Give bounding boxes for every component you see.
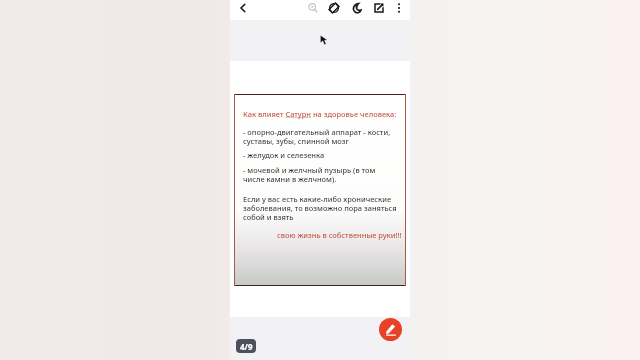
button[interactable]: Edit — [379, 318, 402, 341]
button[interactable]: Open in browser — [370, 0, 388, 17]
staticText: 4/9 — [240, 341, 253, 352]
staticText: - мочевой и желчный пузырь (в том числе … — [243, 165, 376, 184]
button[interactable]: Night mode — [347, 0, 365, 17]
staticText: Как влияет Сатурн на здоровье человека: — [243, 109, 397, 119]
staticText: - опорно-двигательный аппарат - кости, с… — [243, 127, 391, 146]
button[interactable]: Rotate screen — [325, 0, 343, 17]
staticText: Если у вас есть какие-либо хронические з… — [243, 194, 397, 222]
staticText: свою жизнь в собственные руки!!! — [277, 230, 402, 240]
staticText: - желудок и селезенка — [243, 150, 325, 160]
button[interactable]: Find in page — [304, 0, 322, 17]
button[interactable]: More options — [390, 0, 408, 17]
button[interactable]: 4/9 — [236, 339, 256, 353]
button[interactable]: Back — [234, 0, 252, 17]
